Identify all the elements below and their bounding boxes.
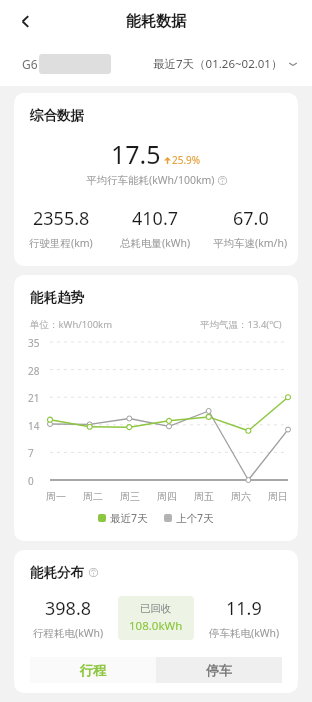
staticText: 总耗电量(kWh): [120, 236, 191, 250]
staticText: 单位：kWh/100km: [30, 318, 113, 331]
staticText: 108.0kWh: [129, 618, 183, 634]
staticText: 周二: [83, 490, 103, 503]
staticText: 能耗趋势: [30, 289, 84, 306]
staticText: 周六: [231, 490, 251, 503]
button[interactable]: G6: [22, 54, 111, 74]
staticText: 行程: [80, 662, 106, 678]
staticText: 能耗分布: [30, 564, 84, 581]
staticText: 能耗数据: [126, 12, 186, 31]
staticText: 11.9: [226, 596, 262, 621]
button[interactable]: 停车: [156, 657, 282, 683]
staticText: 7: [28, 446, 34, 460]
staticText: 周一: [46, 490, 66, 503]
staticText: 平均气温：13.4(℃): [200, 318, 282, 331]
staticText: 35: [28, 336, 40, 350]
staticText: 上个7天: [176, 511, 214, 525]
staticText: 综合数据: [30, 107, 84, 124]
staticText: 行驶里程(km): [29, 236, 93, 250]
staticText: 67.0: [233, 206, 269, 231]
staticText: 14: [28, 419, 40, 433]
staticText: G6: [22, 56, 38, 72]
staticText: 周日: [268, 490, 288, 503]
staticText: 周五: [194, 490, 214, 503]
staticText: 平均车速(km/h): [213, 236, 288, 250]
staticText: 410.7: [132, 206, 179, 231]
button[interactable]: Back: [8, 4, 42, 38]
button[interactable]: 最近7天（01.26~02.01）: [153, 56, 298, 72]
staticText: 停车耗电(kWh): [209, 626, 280, 640]
staticText: 17.5: [111, 137, 161, 171]
staticText: 周四: [157, 490, 177, 503]
staticText: 2355.8: [33, 206, 90, 231]
button[interactable]: 行程: [30, 657, 156, 683]
staticText: 398.8: [45, 596, 92, 621]
staticText: 已回收: [140, 602, 172, 615]
staticText: 平均行车能耗(kWh/100km): [86, 173, 215, 187]
staticText: 最近7天（01.26~02.01）: [153, 56, 283, 72]
staticText: 最近7天: [110, 511, 148, 525]
staticText: 28: [28, 364, 40, 378]
staticText: 周三: [120, 490, 140, 503]
staticText: 停车: [206, 662, 232, 678]
staticText: 21: [28, 391, 40, 405]
staticText: 25.9%: [172, 153, 201, 167]
staticText: 行程耗电(kWh): [33, 626, 104, 640]
staticText: 0: [28, 474, 34, 488]
